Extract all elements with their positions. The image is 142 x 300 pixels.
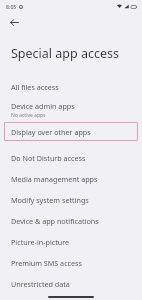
button[interactable]: Premium SMS access — [0, 252, 142, 273]
staticText: No active apps — [11, 112, 46, 119]
button[interactable]: Display over other apps — [4, 122, 138, 141]
button[interactable]: Modify system settings — [0, 189, 142, 210]
button[interactable]: Unrestricted data — [0, 273, 142, 294]
button[interactable]: Do Not Disturb access — [0, 147, 142, 168]
button[interactable]: Back — [5, 13, 23, 31]
button[interactable]: All files access — [0, 76, 142, 97]
staticText: Unrestricted data — [11, 279, 70, 289]
staticText: Premium SMS access — [11, 258, 82, 268]
staticText: Device admin apps — [11, 101, 75, 111]
staticText: Display over other apps — [11, 127, 91, 137]
button[interactable]: Picture-in-picture — [0, 231, 142, 252]
staticText: All files access — [11, 82, 59, 92]
staticText: Do Not Disturb access — [11, 153, 86, 163]
button[interactable]: Media management apps — [0, 168, 142, 189]
staticText: Special app access — [11, 45, 119, 62]
staticText: Media management apps — [11, 174, 98, 184]
staticText: Modify system settings — [11, 195, 89, 205]
staticText: Device & app notifications — [11, 216, 99, 226]
staticText: 8:05 — [6, 3, 17, 10]
button[interactable]: Device admin apps — [0, 97, 142, 122]
staticText: Picture-in-picture — [11, 237, 70, 247]
button[interactable]: Device & app notifications — [0, 210, 142, 231]
